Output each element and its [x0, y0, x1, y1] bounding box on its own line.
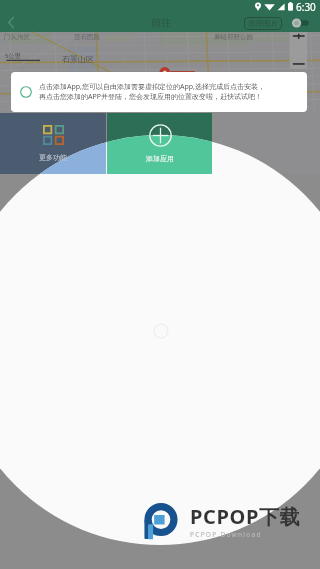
staticText: 6:30: [296, 0, 316, 13]
staticText: 再点击您添加的APP并登陆，您会发现应用的位置改变啦，赶快试试吧！: [39, 92, 262, 102]
staticText: 选择图片: [248, 19, 278, 28]
button[interactable]: 更多功能: [0, 113, 106, 174]
staticText: 5公里: [5, 52, 21, 60]
staticText: 门头沟区: [4, 33, 30, 41]
button[interactable]: 选择图片: [244, 17, 282, 30]
staticText: 麻峪郊野公园: [214, 33, 253, 41]
staticText: 莲石西路: [74, 33, 100, 41]
staticText: PCPOP Download: [190, 530, 262, 539]
button[interactable]: Back: [0, 13, 21, 32]
staticText: 添加应用: [146, 154, 174, 163]
staticText: 前往: [151, 16, 171, 29]
staticText: 更多功能: [39, 153, 67, 162]
staticText: PCPOP下载: [190, 503, 301, 530]
button[interactable]: Toggle location simulation: [290, 16, 312, 30]
button[interactable]: 点击添加App,您可以自由添加需要虚拟定位的App,选择完成后点击安装，: [11, 72, 307, 112]
staticText: 点击添加App,您可以自由添加需要虚拟定位的App,选择完成后点击安装，: [39, 82, 265, 92]
staticText: 石景山区: [62, 54, 94, 64]
button[interactable]: 添加应用: [107, 113, 212, 174]
